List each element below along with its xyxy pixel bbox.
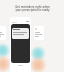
button[interactable]: Next card (34, 26, 44, 40)
staticText: Get reminders right when (15, 5, 50, 9)
button[interactable] (13, 29, 28, 38)
button[interactable]: Previous card (0, 26, 6, 40)
staticText: your prescription is ready (15, 8, 50, 12)
staticText: 9:41 (12, 20, 17, 23)
